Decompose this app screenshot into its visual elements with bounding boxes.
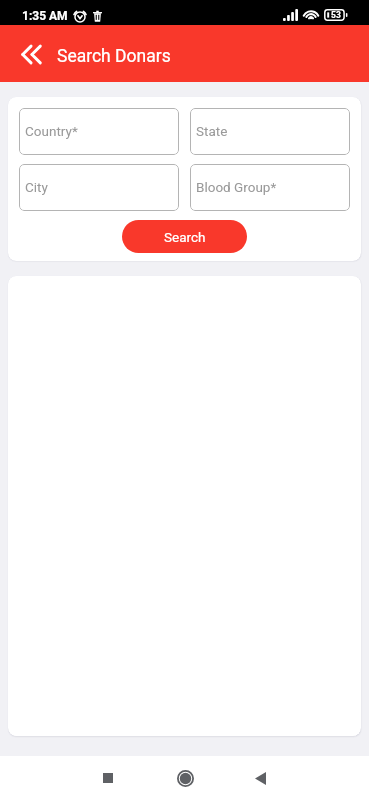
staticText: 53 xyxy=(331,10,341,20)
staticText: State xyxy=(196,123,228,139)
button[interactable]: Country* xyxy=(19,108,179,155)
button[interactable]: Home xyxy=(163,756,207,800)
staticText: Country* xyxy=(25,123,78,139)
button[interactable]: Back xyxy=(238,756,282,800)
staticText: Search xyxy=(164,229,206,245)
button[interactable]: Recent apps xyxy=(86,756,130,800)
staticText: Blood Group* xyxy=(196,179,277,195)
button[interactable]: Search xyxy=(122,220,247,253)
button[interactable]: Blood Group* xyxy=(190,164,350,211)
staticText: Search Donars xyxy=(57,46,171,67)
button[interactable]: Back xyxy=(19,40,43,68)
button[interactable]: State xyxy=(190,108,350,155)
button[interactable]: City xyxy=(19,164,179,211)
staticText: City xyxy=(25,179,48,195)
staticText: 1:35 AM xyxy=(22,9,68,23)
